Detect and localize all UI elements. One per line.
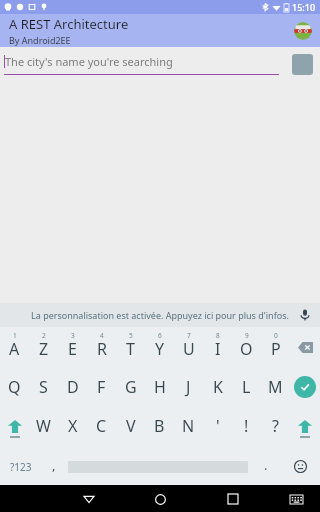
staticText: H (154, 376, 166, 398)
button[interactable]: . (250, 450, 281, 483)
staticText: O (240, 338, 253, 360)
staticText: 7 (187, 331, 191, 340)
button[interactable]: C (87, 407, 116, 450)
staticText: U (183, 338, 195, 360)
staticText: X (68, 415, 78, 437)
staticText: 3 (71, 331, 75, 340)
staticText: ?123 (10, 460, 32, 474)
staticText: K (213, 376, 223, 398)
staticText: 4 (100, 331, 104, 340)
button[interactable]: L (232, 367, 261, 407)
staticText: A (9, 338, 20, 360)
button[interactable]: 0 (261, 327, 290, 367)
button[interactable]: S (29, 367, 58, 407)
button[interactable]: Q (0, 367, 29, 407)
button[interactable]: 5 (116, 327, 145, 367)
button[interactable]: Hide keyboard (286, 489, 306, 509)
button[interactable]: V (116, 407, 145, 450)
staticText: V (126, 415, 136, 437)
staticText: Q (8, 376, 21, 398)
button[interactable]: Home (149, 488, 171, 510)
staticText: 15:10 (292, 1, 316, 13)
button[interactable]: Back (78, 488, 100, 510)
staticText: La personnalisation est activée. Appuyez… (31, 309, 289, 321)
staticText: I (215, 338, 221, 360)
staticText: ! (244, 415, 249, 437)
button[interactable]: ' (203, 407, 232, 450)
staticText: 8 (216, 331, 220, 340)
staticText: N (182, 415, 195, 437)
staticText: L (242, 376, 251, 398)
staticText: ' (216, 415, 220, 437)
button[interactable]: 9 (232, 327, 261, 367)
button[interactable]: N (174, 407, 203, 450)
button[interactable]: Emoji (281, 450, 320, 483)
staticText: D (67, 376, 79, 398)
button[interactable]: Shift (290, 407, 320, 450)
staticText: ? (272, 415, 279, 437)
staticText: S (39, 376, 48, 398)
staticText: 2 (42, 331, 46, 340)
button[interactable]: Search (292, 54, 313, 75)
button[interactable]: 8 (203, 327, 232, 367)
button[interactable]: H (145, 367, 174, 407)
button[interactable]: W (29, 407, 58, 450)
button[interactable]: , (41, 450, 66, 483)
staticText: B (154, 415, 165, 437)
staticText: 5 (129, 331, 133, 340)
button[interactable]: D (58, 367, 87, 407)
button[interactable]: Enter (290, 367, 320, 407)
button[interactable]: Account (294, 22, 312, 40)
staticText: The city's name you're searching (5, 54, 173, 69)
staticText: J (186, 376, 191, 398)
button[interactable]: 6 (145, 327, 174, 367)
staticText: , (52, 456, 56, 474)
button[interactable]: ?123 (0, 450, 41, 483)
staticText: T (126, 338, 135, 360)
button[interactable]: J (174, 367, 203, 407)
staticText: By Android2EE (9, 34, 71, 46)
staticText: E (68, 338, 77, 360)
button[interactable]: B (145, 407, 174, 450)
button[interactable]: 3 (58, 327, 87, 367)
staticText: 0 (274, 331, 278, 340)
button[interactable]: K (203, 367, 232, 407)
button[interactable]: 1 (0, 327, 29, 367)
staticText: Y (155, 338, 165, 360)
button[interactable]: X (58, 407, 87, 450)
staticText: M (268, 376, 283, 398)
staticText: P (271, 338, 281, 360)
staticText: 9 (245, 331, 249, 340)
button[interactable]: Voice input (298, 308, 312, 322)
staticText: . (264, 456, 268, 474)
button[interactable]: G (116, 367, 145, 407)
staticText: G (125, 376, 137, 398)
button[interactable]: Recents (222, 488, 244, 510)
staticText: C (96, 415, 107, 437)
button[interactable]: Backspace (290, 327, 320, 367)
button[interactable]: F (87, 367, 116, 407)
staticText: A REST Architecture (9, 15, 129, 33)
button[interactable]: ! (232, 407, 261, 450)
button[interactable]: M (261, 367, 290, 407)
button[interactable]: ? (261, 407, 290, 450)
staticText: R (97, 338, 107, 360)
staticText: Z (39, 338, 49, 360)
button[interactable]: Shift (0, 407, 29, 450)
staticText: 1 (13, 331, 17, 340)
staticText: F (97, 376, 106, 398)
button[interactable]: 2 (29, 327, 58, 367)
button[interactable]: La personnalisation est activée. Appuyez… (0, 303, 320, 327)
staticText: W (36, 415, 51, 437)
button[interactable]: 7 (174, 327, 203, 367)
button[interactable]: 4 (87, 327, 116, 367)
staticText: 6 (158, 331, 162, 340)
